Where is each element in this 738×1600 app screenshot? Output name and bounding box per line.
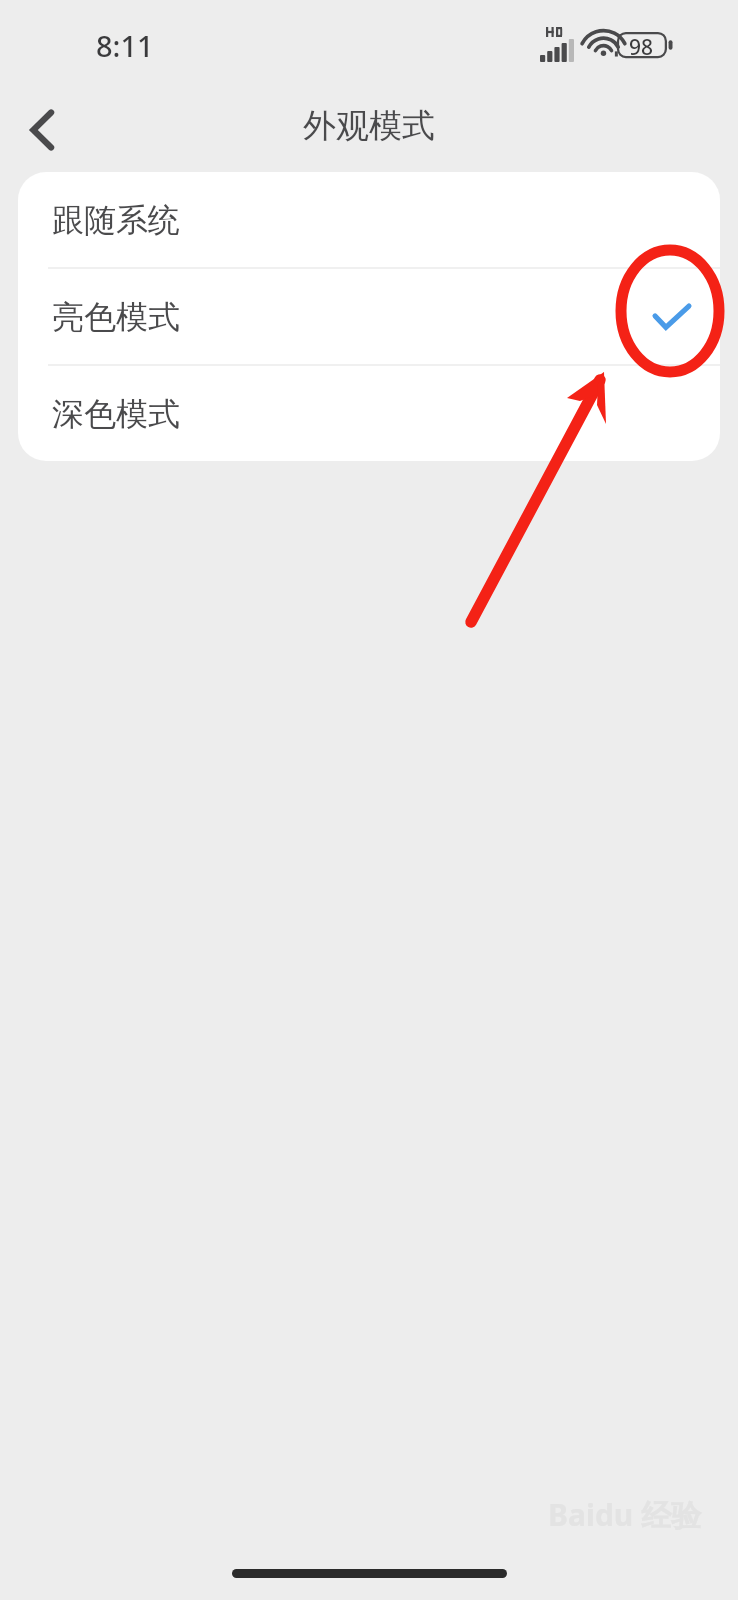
staticText: 外观模式	[0, 105, 738, 147]
staticText: 亮色模式	[52, 297, 180, 337]
staticText: Baidu 经验	[548, 1494, 702, 1535]
button[interactable]: Back	[8, 96, 76, 164]
staticText: 8:11	[96, 26, 154, 65]
staticText: 跟随系统	[52, 200, 180, 240]
staticText: 深色模式	[52, 394, 180, 434]
staticText: 98	[629, 33, 654, 62]
button[interactable]: 深色模式	[18, 366, 720, 461]
button[interactable]: 亮色模式	[18, 269, 720, 364]
button[interactable]: 跟随系统	[18, 172, 720, 267]
